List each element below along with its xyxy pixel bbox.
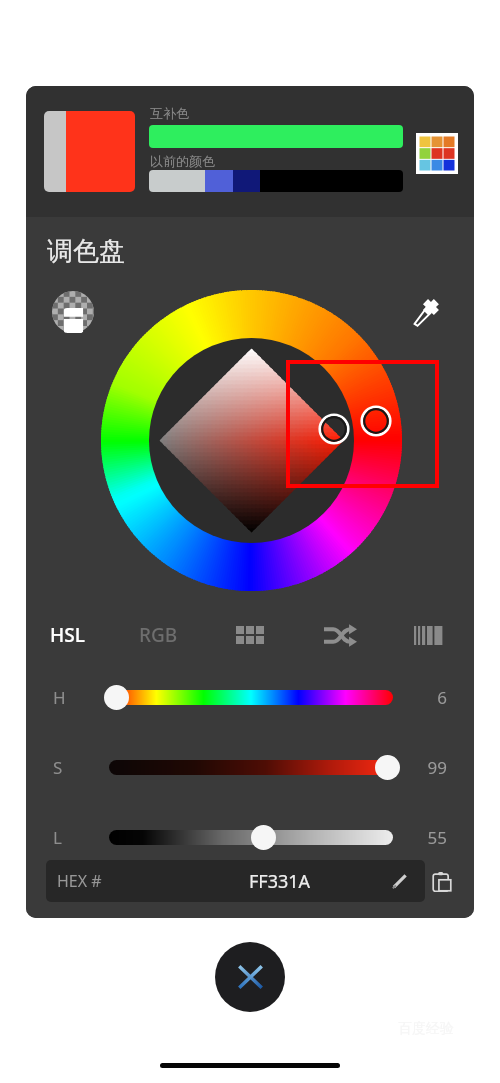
button[interactable]: RGB [124, 613, 192, 657]
staticText: L [53, 826, 62, 849]
button[interactable]: Complementary color [149, 125, 403, 148]
staticText: 调色盘 [47, 235, 125, 268]
staticText: 6 [437, 686, 447, 709]
button[interactable]: HSL [34, 613, 100, 657]
staticText: HSL [50, 622, 85, 648]
button[interactable]: Current color [44, 111, 135, 192]
staticText: S [53, 756, 63, 779]
button[interactable]: Swatches [230, 614, 270, 656]
button[interactable]: Edit hex [387, 868, 413, 894]
button[interactable]: HEX # [46, 860, 425, 902]
button[interactable]: L slider [251, 825, 276, 850]
button[interactable]: Shuffle [320, 614, 360, 656]
staticText: 99 [427, 756, 447, 779]
button[interactable]: Previous colors [149, 170, 403, 192]
button[interactable]: Transparency [46, 285, 99, 338]
button[interactable]: Palette grid [412, 128, 462, 178]
button[interactable]: Close [215, 942, 285, 1012]
staticText: H [53, 686, 66, 709]
button[interactable]: S slider [375, 755, 400, 780]
staticText: 百度经验 [398, 1020, 454, 1038]
staticText: 互补色 [150, 105, 189, 121]
button[interactable]: H slider [104, 685, 129, 710]
staticText: HEX # [57, 870, 102, 892]
staticText: FF331A [249, 869, 311, 893]
button[interactable]: Color wheel [100, 289, 403, 592]
button[interactable]: Eyedropper [402, 285, 454, 337]
staticText: 55 [427, 826, 447, 849]
staticText: 以前的颜色 [150, 153, 215, 169]
staticText: RGB [139, 622, 178, 648]
button[interactable]: Copy [426, 866, 458, 898]
button[interactable]: Gradient [408, 614, 448, 656]
